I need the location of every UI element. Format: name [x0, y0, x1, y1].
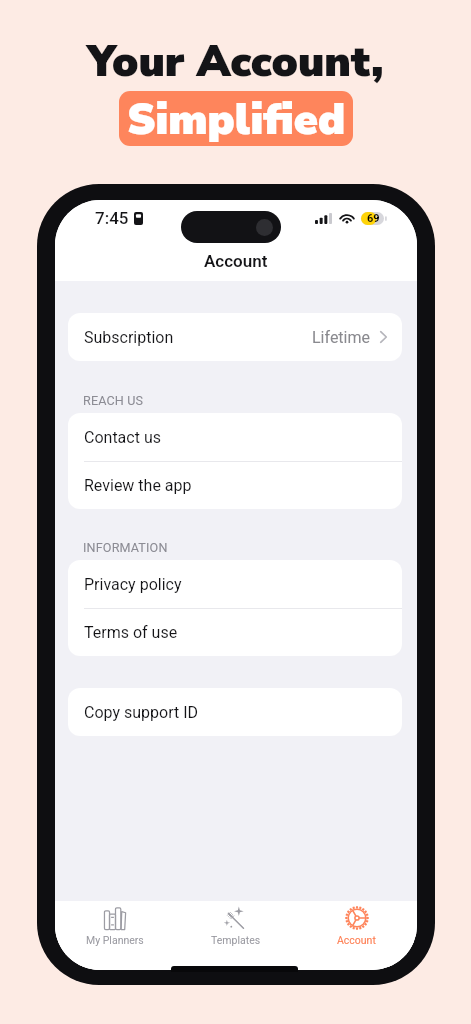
staticText: Subscription [84, 328, 174, 347]
staticText: Copy support ID [84, 703, 199, 722]
staticText: Terms of use [84, 623, 178, 642]
staticText: REACH US [83, 393, 144, 408]
staticText: Simplified [127, 91, 346, 146]
button[interactable]: Templates [175, 901, 296, 951]
button[interactable]: Copy support ID [68, 688, 402, 736]
staticText: 69 [367, 212, 380, 225]
staticText: Templates [211, 934, 261, 946]
staticText: 7:45 [95, 208, 129, 228]
button[interactable]: Contact us [68, 413, 402, 461]
staticText: Contact us [84, 428, 161, 447]
staticText: Review the app [84, 476, 192, 495]
button[interactable]: Subscription [68, 313, 402, 361]
staticText: INFORMATION [83, 540, 168, 555]
button[interactable]: Review the app [68, 462, 402, 509]
staticText: Lifetime [312, 328, 371, 347]
staticText: Your Account, [87, 33, 384, 92]
staticText: My Planners [86, 934, 144, 946]
button[interactable]: Privacy policy [68, 560, 402, 608]
staticText: Account [337, 934, 376, 946]
staticText: Privacy policy [84, 575, 182, 594]
button[interactable]: Account [296, 901, 417, 951]
button[interactable]: Terms of use [68, 609, 402, 656]
button[interactable]: My Planners [55, 901, 175, 951]
staticText: Account [204, 251, 268, 271]
